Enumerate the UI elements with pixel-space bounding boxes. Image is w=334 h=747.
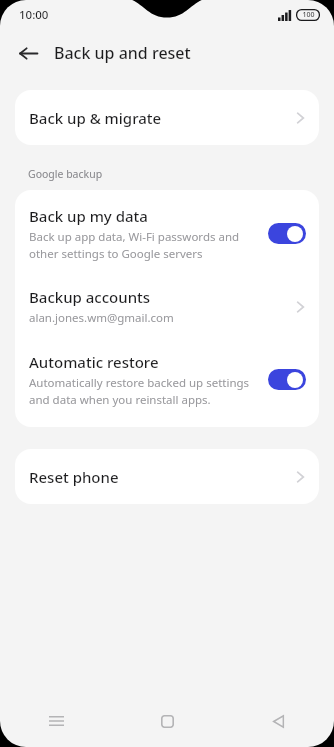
staticText: Automatically restore backed up settings…	[29, 375, 258, 407]
button[interactable]: Back up & migrate	[15, 90, 319, 145]
button[interactable]: Home	[112, 695, 223, 747]
button[interactable]: Back	[12, 37, 44, 69]
button[interactable]: Backup accounts	[15, 275, 319, 340]
button[interactable]: Back up my data	[15, 190, 319, 275]
staticText: Back up & migrate	[29, 108, 296, 128]
staticText: 10:00	[19, 7, 49, 23]
staticText: Back up my data	[29, 206, 148, 226]
staticText: Reset phone	[29, 467, 296, 487]
staticText: Backup accounts	[29, 287, 151, 307]
staticText: Back up and reset	[54, 42, 191, 64]
button[interactable]: Toggle on	[268, 369, 306, 390]
button[interactable]: Recent apps	[0, 695, 112, 747]
staticText: 100	[302, 10, 315, 20]
staticText: Back up app data, Wi-Fi passwords and ot…	[29, 229, 258, 261]
staticText: Automatic restore	[29, 352, 159, 372]
staticText: Google backup	[28, 167, 103, 181]
button[interactable]: Toggle on	[268, 223, 306, 244]
button[interactable]: Automatic restore	[15, 340, 319, 427]
button[interactable]: Back	[223, 695, 334, 747]
staticText: alan.jones.wm@gmail.com	[29, 310, 174, 326]
button[interactable]: Reset phone	[15, 449, 319, 504]
